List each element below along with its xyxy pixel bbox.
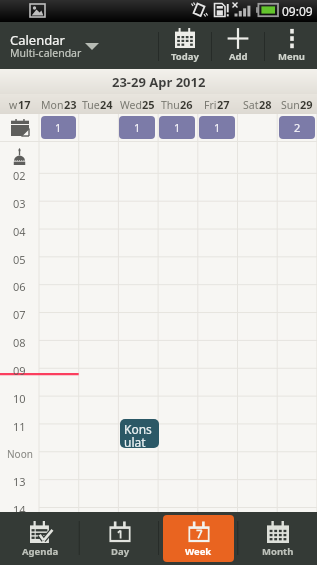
- button[interactable]: 23-29 Apr 2012: [0, 69, 317, 94]
- button[interactable]: Agenda: [4, 515, 76, 562]
- staticText: 07: [13, 307, 26, 322]
- staticText: Day: [111, 545, 130, 558]
- button[interactable]: 1: [199, 116, 235, 139]
- staticText: 14: [13, 502, 26, 517]
- button[interactable]: Tue: [78, 94, 117, 114]
- staticText: 25: [142, 97, 155, 112]
- staticText: Agenda: [22, 545, 59, 558]
- staticText: 23: [64, 97, 77, 112]
- button[interactable]: Day: [84, 515, 155, 562]
- staticText: 29: [300, 97, 313, 112]
- staticText: 24: [100, 97, 113, 112]
- staticText: 04: [13, 224, 26, 239]
- button[interactable]: Add: [212, 22, 264, 69]
- button[interactable]: Today: [159, 22, 211, 69]
- staticText: Add: [229, 50, 248, 63]
- staticText: Menu: [278, 50, 305, 63]
- staticText: Thu: [161, 98, 180, 112]
- button[interactable]: Mon: [39, 94, 78, 114]
- staticText: 2: [294, 120, 301, 135]
- button[interactable]: Fri: [197, 94, 237, 114]
- staticText: 10: [13, 391, 26, 406]
- staticText: 28: [259, 97, 272, 112]
- staticText: Fri: [204, 98, 217, 112]
- button[interactable]: Menu: [265, 22, 317, 69]
- button[interactable]: Sat: [237, 94, 277, 114]
- staticText: 09:09: [282, 3, 313, 19]
- button[interactable]: 2: [279, 116, 315, 139]
- button[interactable]: 1: [41, 116, 76, 139]
- button[interactable]: Month: [242, 515, 313, 562]
- button[interactable]: Wed: [117, 94, 157, 114]
- staticText: Week: [185, 545, 212, 558]
- staticText: Sun: [281, 98, 300, 112]
- button[interactable]: Week: [163, 515, 234, 562]
- staticText: 1: [214, 120, 221, 135]
- staticText: Konsulat: [124, 421, 159, 448]
- staticText: 17: [18, 97, 31, 112]
- button[interactable]: Calendar: [0, 22, 158, 69]
- staticText: 13: [13, 474, 26, 489]
- staticText: Wed: [120, 98, 142, 112]
- staticText: 27: [217, 97, 230, 112]
- button[interactable]: 1: [159, 116, 195, 139]
- button[interactable]: 1: [119, 116, 155, 139]
- button[interactable]: Sun: [277, 94, 317, 114]
- staticText: 05: [13, 252, 26, 267]
- staticText: Tue: [82, 98, 100, 112]
- staticText: 1: [174, 120, 181, 135]
- staticText: 06: [13, 279, 26, 294]
- staticText: 1: [55, 120, 62, 135]
- staticText: 23-29 Apr 2012: [112, 73, 206, 91]
- staticText: 09: [13, 363, 26, 378]
- staticText: 02: [13, 168, 26, 183]
- staticText: w: [9, 98, 18, 112]
- staticText: Today: [171, 50, 199, 63]
- staticText: Sat: [243, 98, 259, 112]
- staticText: 11: [13, 419, 26, 434]
- button[interactable]: Thu: [157, 94, 197, 114]
- staticText: 08: [13, 335, 26, 350]
- staticText: Multi-calendar: [10, 46, 82, 60]
- staticText: Noon: [7, 447, 33, 461]
- staticText: 26: [180, 97, 193, 112]
- staticText: 1: [134, 120, 141, 135]
- staticText: Mon: [41, 98, 64, 112]
- staticText: 03: [13, 196, 26, 211]
- staticText: Calendar: [10, 31, 65, 49]
- button[interactable]: Konsulat: [120, 419, 159, 448]
- staticText: Month: [262, 545, 294, 558]
